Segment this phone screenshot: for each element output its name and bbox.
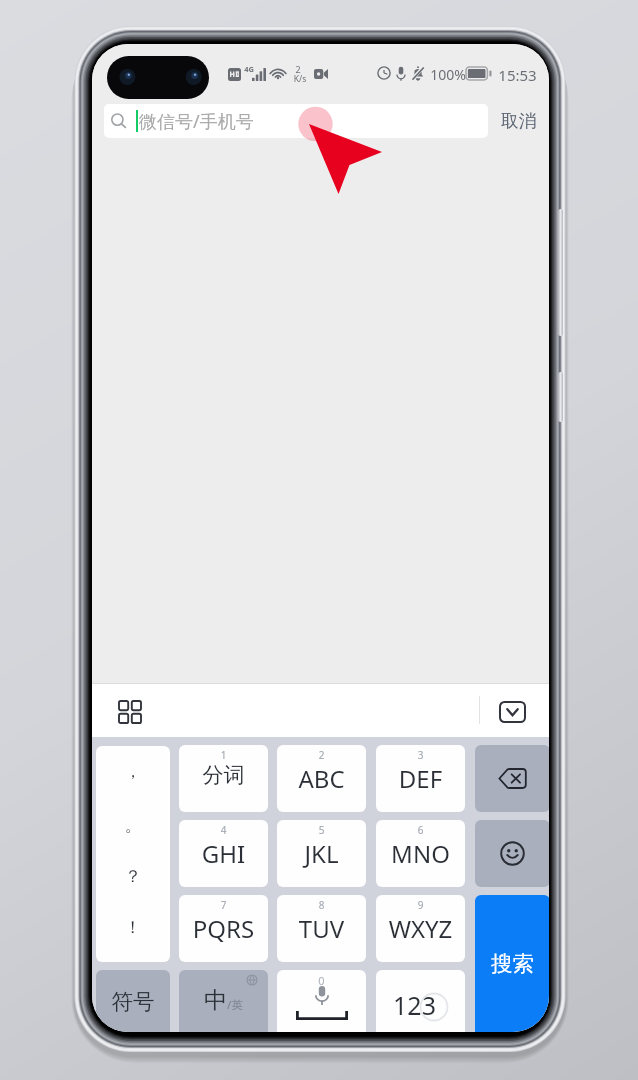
button[interactable]: 符号 bbox=[96, 970, 170, 1032]
staticText: ！ bbox=[121, 917, 145, 938]
button[interactable]: 3 bbox=[376, 745, 465, 812]
staticText: 6 bbox=[376, 823, 465, 837]
other: HD call bbox=[228, 68, 241, 81]
staticText: 2 bbox=[291, 63, 305, 75]
button[interactable]: 9 bbox=[376, 895, 465, 962]
staticText: JKL bbox=[277, 837, 366, 870]
staticText: 4G bbox=[244, 64, 254, 74]
button[interactable]: Keyboard layouts bbox=[112, 694, 148, 730]
staticText: PQRS bbox=[179, 912, 268, 945]
staticText: MNO bbox=[376, 837, 465, 870]
staticText: 4 bbox=[179, 823, 268, 837]
staticText: 2 bbox=[277, 748, 366, 762]
staticText: 搜索 bbox=[475, 950, 549, 977]
staticText: ABC bbox=[277, 762, 366, 795]
staticText: 123 bbox=[376, 988, 459, 1022]
staticText: WXYZ bbox=[376, 912, 465, 945]
staticText: 8 bbox=[277, 898, 366, 912]
staticText: 0 bbox=[277, 973, 366, 988]
staticText: ？ bbox=[121, 866, 145, 887]
staticText: 9 bbox=[376, 898, 465, 912]
button[interactable]: 6 bbox=[376, 820, 465, 887]
staticText: 1 bbox=[179, 748, 268, 762]
button[interactable]: 4 bbox=[179, 820, 268, 887]
button[interactable]: 取消 bbox=[496, 104, 540, 138]
button[interactable]: Voice input bbox=[277, 970, 366, 1032]
staticText: 15:53 bbox=[498, 65, 537, 85]
button[interactable]: Backspace bbox=[475, 745, 549, 812]
staticText: 微信号/手机号 bbox=[139, 109, 254, 134]
staticText: K/s bbox=[292, 73, 308, 85]
staticText: 5 bbox=[277, 823, 366, 837]
button[interactable]: 8 bbox=[277, 895, 366, 962]
staticText: 3 bbox=[376, 748, 465, 762]
staticText: TUV bbox=[277, 912, 366, 945]
staticText: 7 bbox=[179, 898, 268, 912]
staticText: 取消 bbox=[501, 110, 536, 132]
button[interactable]: Emoji bbox=[475, 820, 549, 887]
button[interactable]: 1 bbox=[179, 745, 268, 812]
staticText: 中 bbox=[204, 986, 227, 1015]
button[interactable]: 7 bbox=[179, 895, 268, 962]
button[interactable]: 5 bbox=[277, 820, 366, 887]
button[interactable]: 2 bbox=[277, 745, 366, 812]
button[interactable]: Hide keyboard bbox=[494, 694, 530, 730]
button[interactable]: 搜索 bbox=[475, 895, 549, 1032]
staticText: /英 bbox=[227, 997, 243, 1013]
staticText: 。 bbox=[121, 816, 145, 836]
button[interactable]: 中 bbox=[179, 970, 268, 1032]
staticText: DEF bbox=[376, 762, 465, 795]
staticText: ， bbox=[121, 762, 145, 782]
button[interactable]: ， bbox=[96, 746, 170, 962]
button[interactable]: 微信号/手机号 bbox=[104, 104, 488, 138]
staticText: 100% bbox=[430, 65, 466, 84]
staticText: 分词 bbox=[179, 762, 268, 788]
staticText: 符号 bbox=[96, 988, 170, 1015]
staticText: GHI bbox=[179, 837, 268, 870]
button[interactable]: 123 bbox=[376, 970, 465, 1032]
